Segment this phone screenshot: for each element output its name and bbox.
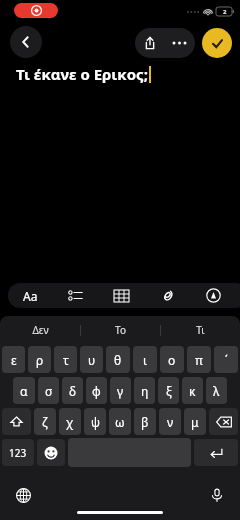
button[interactable]: Checklist	[52, 283, 98, 308]
staticText: χ	[66, 414, 74, 430]
staticText: σ	[45, 383, 53, 399]
button[interactable]: ο	[160, 346, 184, 373]
button[interactable]: Το	[81, 316, 160, 344]
button[interactable]: τ	[54, 346, 77, 373]
button[interactable]: Table	[98, 283, 144, 308]
staticText: υ	[88, 352, 96, 368]
staticText: ζ	[42, 414, 48, 430]
button[interactable]: ι	[133, 346, 157, 373]
staticText: ρ	[36, 352, 44, 368]
button[interactable]: γ	[110, 377, 131, 404]
staticText: η	[141, 383, 149, 399]
button[interactable]: Recording	[14, 3, 58, 18]
button[interactable]: π	[187, 346, 211, 373]
button[interactable]: Share	[135, 28, 165, 58]
button[interactable]: Shift	[2, 408, 31, 435]
button[interactable]: ε	[2, 346, 25, 373]
staticText: ξ	[166, 383, 172, 399]
staticText: Aa	[23, 288, 38, 304]
button[interactable]: λ	[206, 377, 227, 404]
staticText: 123	[9, 446, 27, 460]
button[interactable]: Markup	[190, 283, 236, 308]
button[interactable]: Back	[10, 26, 42, 58]
button[interactable]: Τι	[161, 316, 240, 344]
button[interactable]: θ	[106, 346, 130, 373]
button[interactable]: Text format	[8, 283, 52, 308]
button[interactable]: α	[13, 377, 35, 404]
button[interactable]: β	[134, 408, 156, 435]
staticText: λ	[213, 383, 220, 399]
button[interactable]: Numbers	[2, 439, 34, 466]
button[interactable]: ζ	[34, 408, 56, 435]
staticText: ν	[167, 414, 174, 430]
button[interactable]: Attach	[144, 283, 190, 308]
button[interactable]: Emoji	[37, 439, 65, 466]
button[interactable]: ψ	[84, 408, 106, 435]
staticText: Το	[115, 323, 126, 337]
button[interactable]: η	[134, 377, 155, 404]
button[interactable]: Return	[194, 439, 238, 466]
staticText: τ	[63, 352, 69, 368]
staticText: Δεν	[32, 323, 49, 337]
staticText: ΄	[225, 352, 228, 368]
staticText: φ	[92, 383, 101, 399]
staticText: μ	[191, 414, 199, 430]
button[interactable]: δ	[62, 377, 83, 404]
staticText: γ	[117, 383, 124, 399]
staticText: 2	[223, 8, 227, 16]
button[interactable]: More options	[165, 28, 195, 58]
button[interactable]: Backspace	[209, 408, 238, 435]
button[interactable]: ν	[159, 408, 181, 435]
button[interactable]: σ	[38, 377, 59, 404]
staticText: ω	[115, 414, 125, 430]
button[interactable]: ρ	[28, 346, 51, 373]
staticText: ι	[143, 352, 147, 368]
staticText: ψ	[91, 414, 100, 430]
button[interactable]: φ	[86, 377, 107, 404]
button[interactable]: Dictation	[206, 484, 228, 506]
staticText: δ	[69, 383, 77, 399]
staticText: ο	[168, 352, 176, 368]
button[interactable]: μ	[184, 408, 206, 435]
staticText: Τι έκανε ο Ερικος;	[16, 64, 148, 84]
button[interactable]: ΄	[214, 346, 238, 373]
button[interactable]: ξ	[158, 377, 179, 404]
button[interactable]: χ	[59, 408, 81, 435]
staticText: θ	[114, 352, 122, 368]
button[interactable]: κ	[182, 377, 203, 404]
staticText: κ	[189, 383, 196, 399]
button[interactable]: ω	[109, 408, 131, 435]
button[interactable]: Done	[202, 28, 232, 58]
staticText: β	[141, 414, 149, 430]
button[interactable]: υ	[80, 346, 103, 373]
button[interactable]: Δεν	[0, 316, 80, 344]
staticText: α	[20, 383, 28, 399]
staticText: Τι	[196, 323, 205, 337]
staticText: ε	[11, 352, 17, 368]
button[interactable]: Change keyboard	[12, 484, 34, 506]
staticText: π	[195, 352, 203, 368]
